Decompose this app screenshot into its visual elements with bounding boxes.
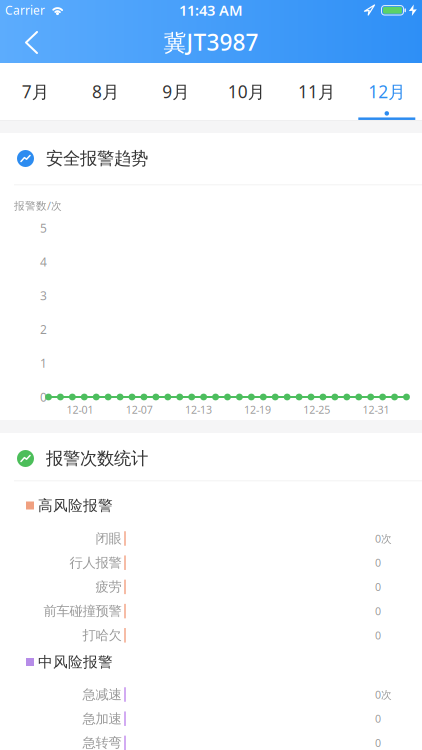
staticText: 报警次数统计 (46, 448, 148, 469)
button[interactable]: 11月 (281, 63, 352, 120)
staticText: 闭眼 (95, 530, 121, 547)
staticText: 0 (375, 604, 381, 618)
staticText: 8月 (92, 80, 119, 103)
staticText: 9月 (162, 80, 189, 103)
staticText: 0次 (375, 531, 392, 546)
button[interactable]: 7月 (0, 63, 70, 120)
staticText: 0 (375, 556, 381, 570)
staticText: 报警数/次 (14, 198, 62, 213)
staticText: 12-13 (185, 402, 212, 417)
button[interactable]: 10月 (211, 63, 281, 120)
staticText: 12-25 (303, 402, 330, 417)
staticText: 3 (40, 288, 47, 303)
staticText: Carrier (5, 2, 45, 18)
staticText: 急减速 (82, 686, 121, 703)
staticText: 行人报警 (69, 554, 121, 571)
staticText: 12-07 (126, 402, 153, 417)
staticText: 11:43 AM (179, 0, 243, 20)
staticText: 7月 (22, 80, 49, 103)
staticText: 10月 (228, 80, 265, 103)
staticText: 11月 (298, 80, 335, 103)
staticText: 0 (375, 736, 381, 750)
button[interactable]: 9月 (141, 63, 211, 120)
staticText: 1 (40, 355, 47, 371)
staticText: 打哈欠 (82, 627, 121, 643)
button[interactable]: Back (26, 32, 37, 53)
staticText: 0 (40, 389, 47, 405)
staticText: 冀JT3987 (163, 27, 258, 57)
button[interactable]: 8月 (70, 63, 141, 120)
staticText: 12-01 (66, 402, 93, 417)
staticText: 0 (375, 712, 381, 726)
staticText: 0 (375, 580, 381, 594)
staticText: 0 (375, 628, 381, 642)
staticText: 急加速 (82, 710, 121, 727)
button[interactable]: 12月 (352, 63, 422, 120)
staticText: 急转弯 (82, 735, 121, 750)
staticText: 5 (40, 220, 47, 236)
staticText: 4 (40, 254, 47, 270)
staticText: 疲劳 (95, 579, 121, 595)
staticText: 中风险报警 (38, 653, 113, 671)
staticText: 12-31 (362, 402, 389, 417)
staticText: 前车碰撞预警 (43, 603, 121, 619)
staticText: 安全报警趋势 (46, 148, 148, 169)
staticText: 2 (40, 321, 47, 337)
staticText: 12-19 (244, 402, 271, 417)
staticText: 0次 (375, 687, 392, 702)
staticText: 12月 (368, 80, 405, 103)
staticText: 高风险报警 (38, 496, 113, 514)
